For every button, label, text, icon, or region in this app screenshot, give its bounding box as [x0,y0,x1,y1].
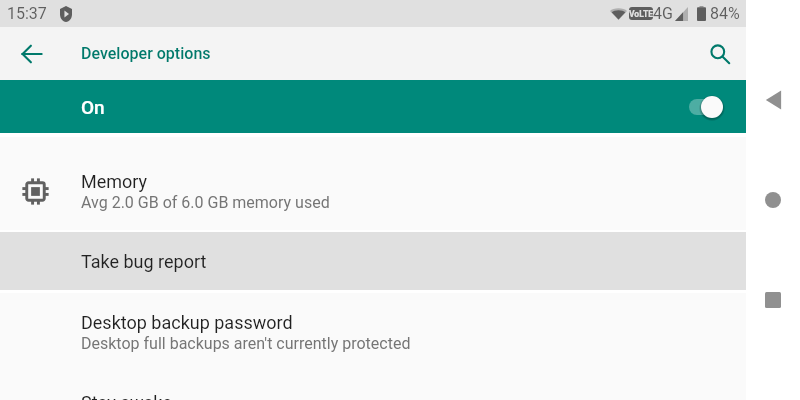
button[interactable]: Search [698,32,742,76]
staticText: Take bug report [81,251,207,272]
button[interactable]: Desktop backup password [0,290,746,373]
button[interactable]: Recent apps [746,273,800,327]
staticText: VoLTE [629,9,653,19]
staticText: Developer options [81,44,211,63]
staticText: 84% [710,4,740,23]
button[interactable]: Home [746,173,800,227]
staticText: 15:37 [7,4,47,23]
button[interactable]: Back [746,73,800,127]
staticText: On [81,96,105,118]
button[interactable]: Navigate up [10,32,54,76]
button[interactable]: Take bug report [0,232,746,290]
staticText: Desktop full backups aren't currently pr… [81,334,411,353]
staticText: Desktop backup password [81,312,293,333]
staticText: Stay awake [81,392,172,400]
button[interactable]: Memory [0,150,746,232]
button[interactable]: On [0,80,746,133]
staticText: 4G [653,4,673,23]
staticText: Avg 2.0 GB of 6.0 GB memory used [81,193,330,212]
button[interactable]: Stay awake [0,373,746,400]
staticText: Memory [81,171,148,192]
